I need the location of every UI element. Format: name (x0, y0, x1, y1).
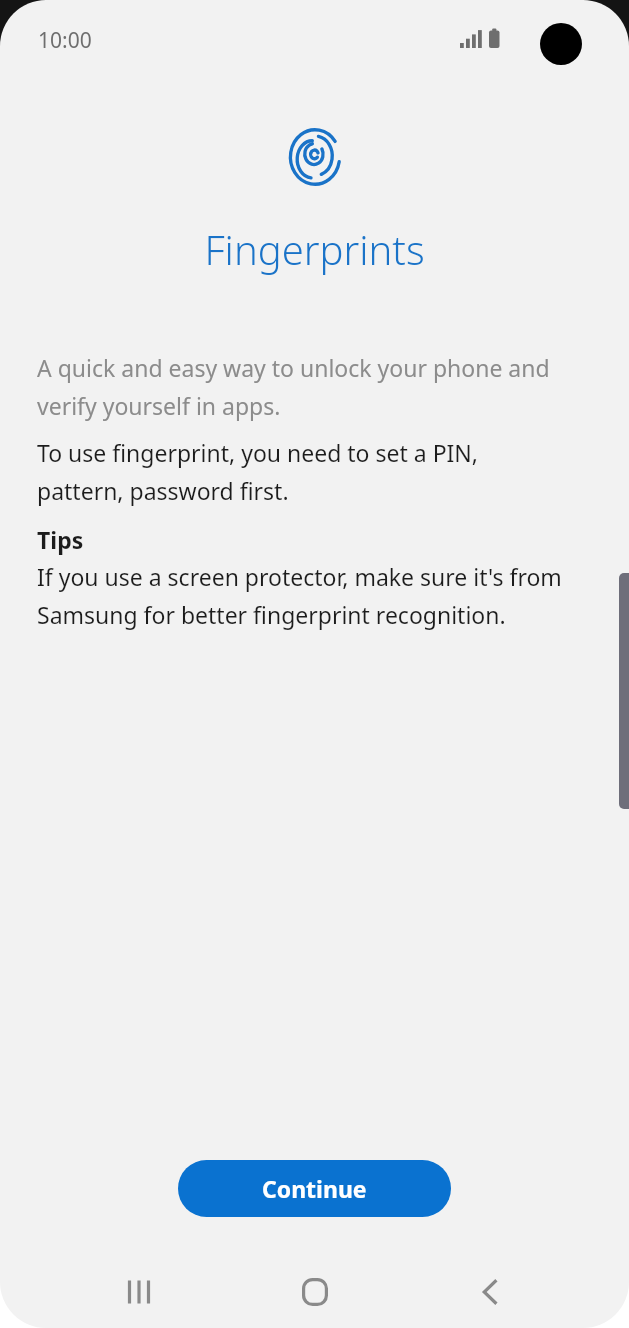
button[interactable]: Recent apps (103, 1256, 175, 1328)
staticText: Fingerprints (204, 222, 425, 276)
staticText: If you use a screen protector, make sure… (37, 561, 567, 631)
button[interactable]: Back (454, 1256, 526, 1328)
staticText: 10:00 (38, 26, 92, 55)
button[interactable]: Home (279, 1256, 351, 1328)
button[interactable]: Continue (178, 1160, 451, 1217)
staticText: To use fingerprint, you need to set a PI… (37, 437, 567, 507)
staticText: Tips (37, 524, 84, 555)
staticText: A quick and easy way to unlock your phon… (37, 352, 567, 422)
staticText: Continue (262, 1173, 367, 1204)
